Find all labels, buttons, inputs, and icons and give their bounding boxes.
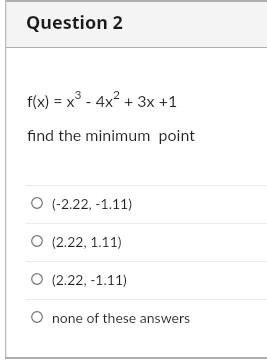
staticText: (2.22, -1.11) xyxy=(52,271,127,288)
staticText: find the minimum point xyxy=(27,125,195,144)
staticText: none of these answers xyxy=(52,309,191,326)
button[interactable]: (-2.22, -1.11) xyxy=(6,185,267,223)
button[interactable]: none of these answers xyxy=(6,299,267,337)
staticText: Question 2 xyxy=(26,10,123,35)
button[interactable]: (2.22, -1.11) xyxy=(6,261,267,299)
staticText: (2.22, 1.11) xyxy=(52,233,122,250)
staticText: f(x) = x3 - 4x2 + 3x +1 xyxy=(27,87,178,110)
button[interactable]: (2.22, 1.11) xyxy=(6,223,267,261)
staticText: (-2.22, -1.11) xyxy=(52,195,132,212)
